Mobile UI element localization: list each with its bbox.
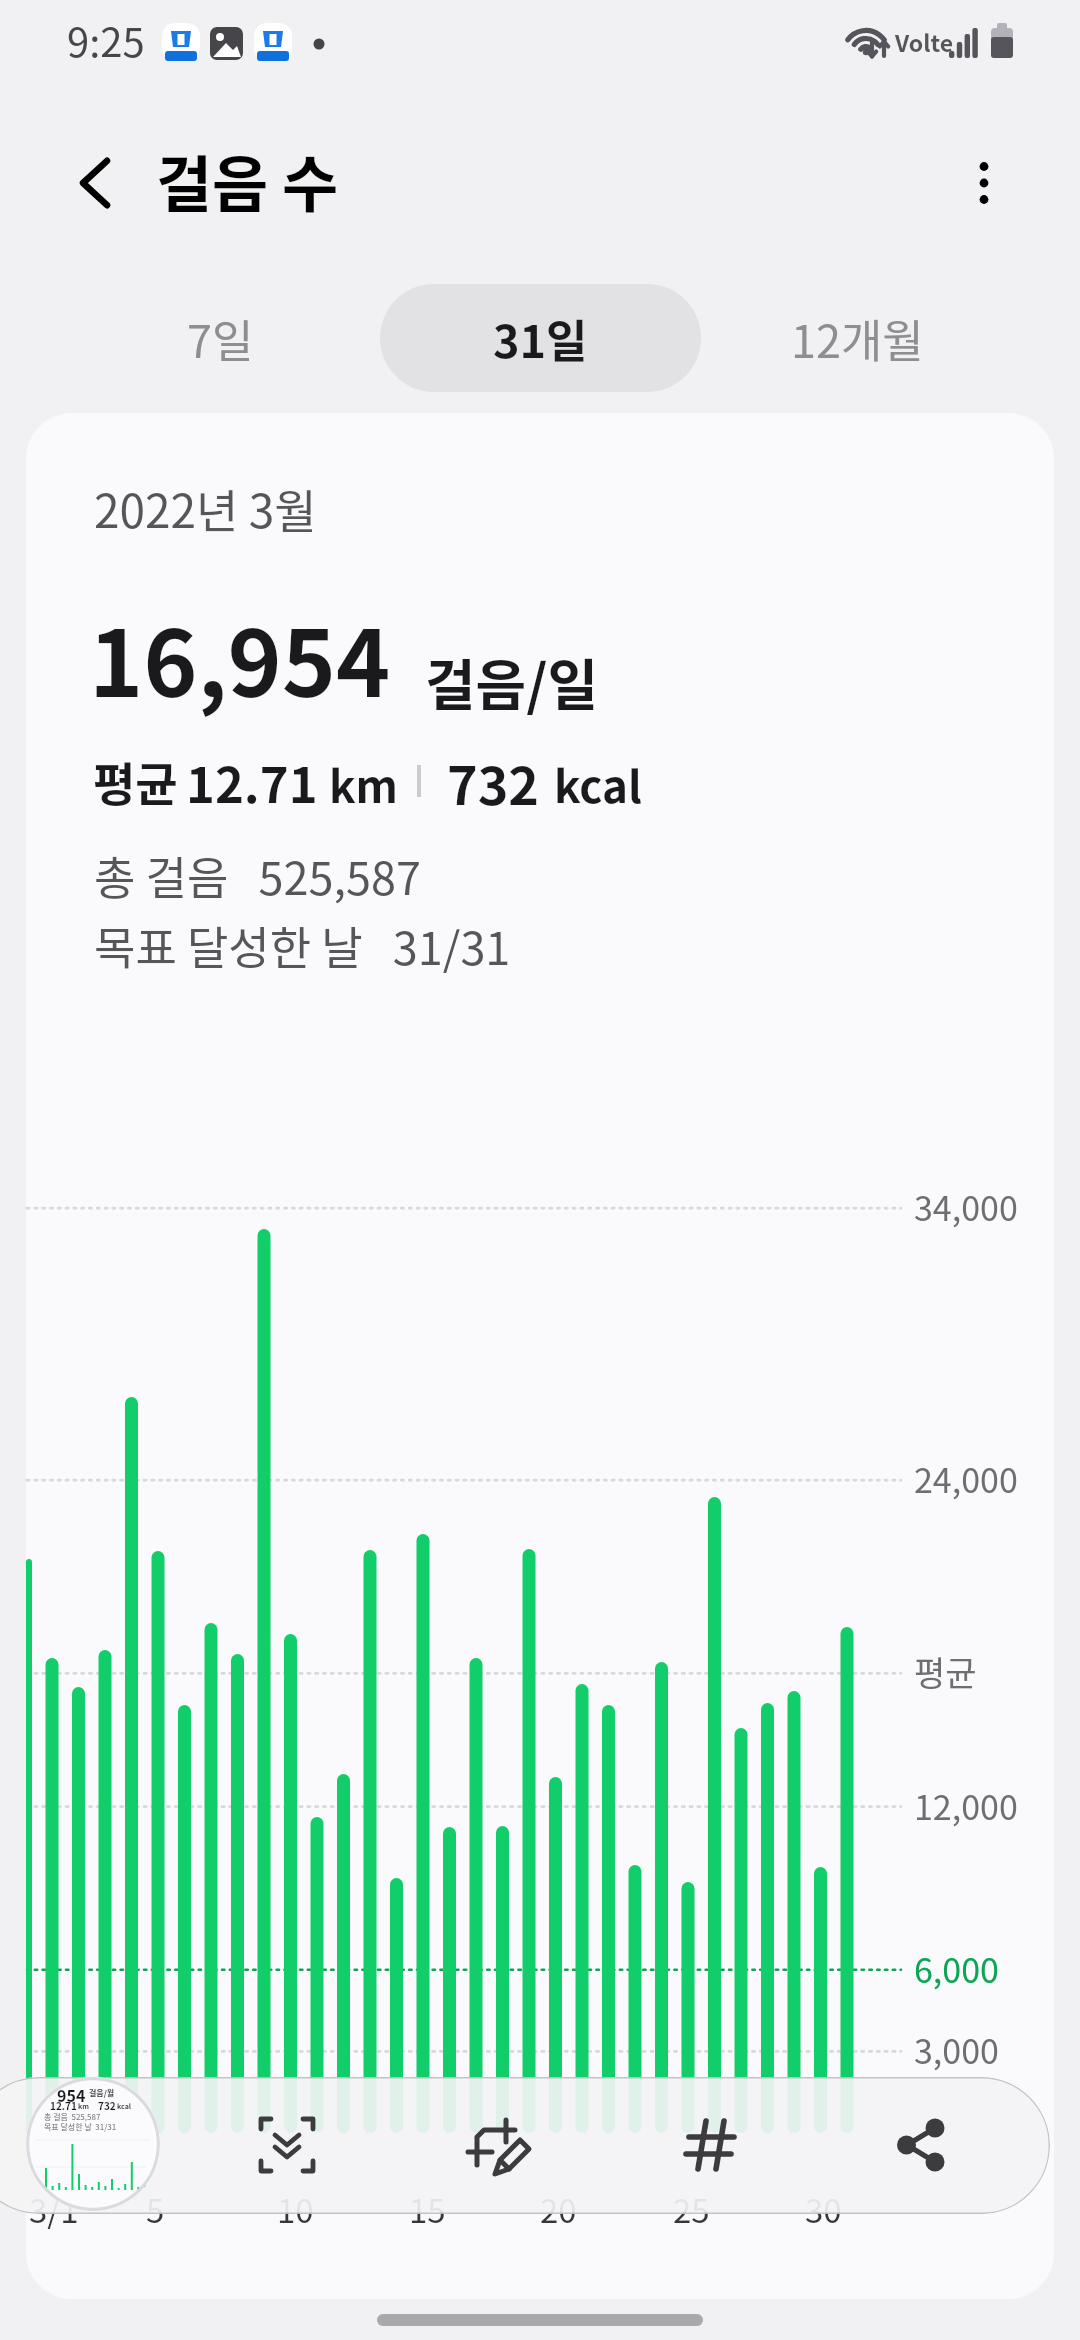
staticText: 3/1	[29, 2185, 79, 2233]
staticText: 7일	[187, 306, 254, 371]
button[interactable]: Back	[40, 115, 150, 250]
button[interactable]: 31일	[380, 284, 701, 392]
staticText: 총 걸음 525,587	[44, 2111, 101, 2123]
staticText: 30	[805, 2185, 842, 2233]
staticText: 걸음/일	[425, 641, 599, 721]
staticText: 3,000	[914, 2025, 999, 2074]
staticText: 2022년 3월	[94, 475, 317, 542]
staticText: 걸음/월	[89, 2087, 115, 2099]
staticText: 12.71	[50, 2098, 77, 2112]
staticText: 12,000	[914, 1781, 1018, 1830]
staticText: 목표 달성한 날 31/31	[94, 913, 511, 978]
staticText: 20	[540, 2185, 577, 2233]
staticText: 9:25	[67, 11, 145, 69]
staticText: 12개월	[791, 306, 924, 371]
staticText: 10	[277, 2185, 314, 2233]
button[interactable]: More options	[930, 115, 1050, 250]
button[interactable]: Screenshot preview	[26, 2077, 160, 2211]
staticText: 31일	[493, 306, 588, 371]
button[interactable]: 7일	[60, 284, 380, 392]
staticText: 12.71	[186, 746, 318, 817]
staticText: Volte	[895, 25, 954, 58]
button[interactable]: Scroll capture	[227, 2085, 347, 2205]
staticText: 954	[57, 2083, 86, 2106]
staticText: 25	[673, 2185, 710, 2233]
staticText: km	[329, 752, 398, 816]
staticText: 평균	[93, 748, 178, 815]
staticText: 34,000	[914, 1182, 1018, 1231]
staticText: 15	[409, 2185, 446, 2233]
staticText: 6,000	[914, 1944, 999, 1993]
staticText: 총 걸음 525,587	[94, 843, 421, 908]
staticText: 24,000	[914, 1454, 1018, 1503]
staticText: 걸음 수	[156, 136, 339, 224]
button[interactable]: Crop and edit	[439, 2085, 559, 2205]
staticText: 목표 달성한 날 31/31	[44, 2121, 117, 2133]
staticText: 5	[146, 2185, 165, 2233]
staticText: 평균	[914, 1647, 977, 1696]
staticText: 732	[98, 2098, 116, 2112]
button[interactable]: Share	[861, 2085, 981, 2205]
staticText: kcal	[554, 752, 642, 816]
staticText: 732	[447, 745, 540, 820]
button[interactable]: 12개월	[740, 284, 974, 392]
staticText: 16,954	[89, 590, 391, 723]
staticText: km	[78, 2101, 89, 2111]
button[interactable]: Tags	[651, 2085, 771, 2205]
staticText: kcal	[117, 2101, 131, 2111]
